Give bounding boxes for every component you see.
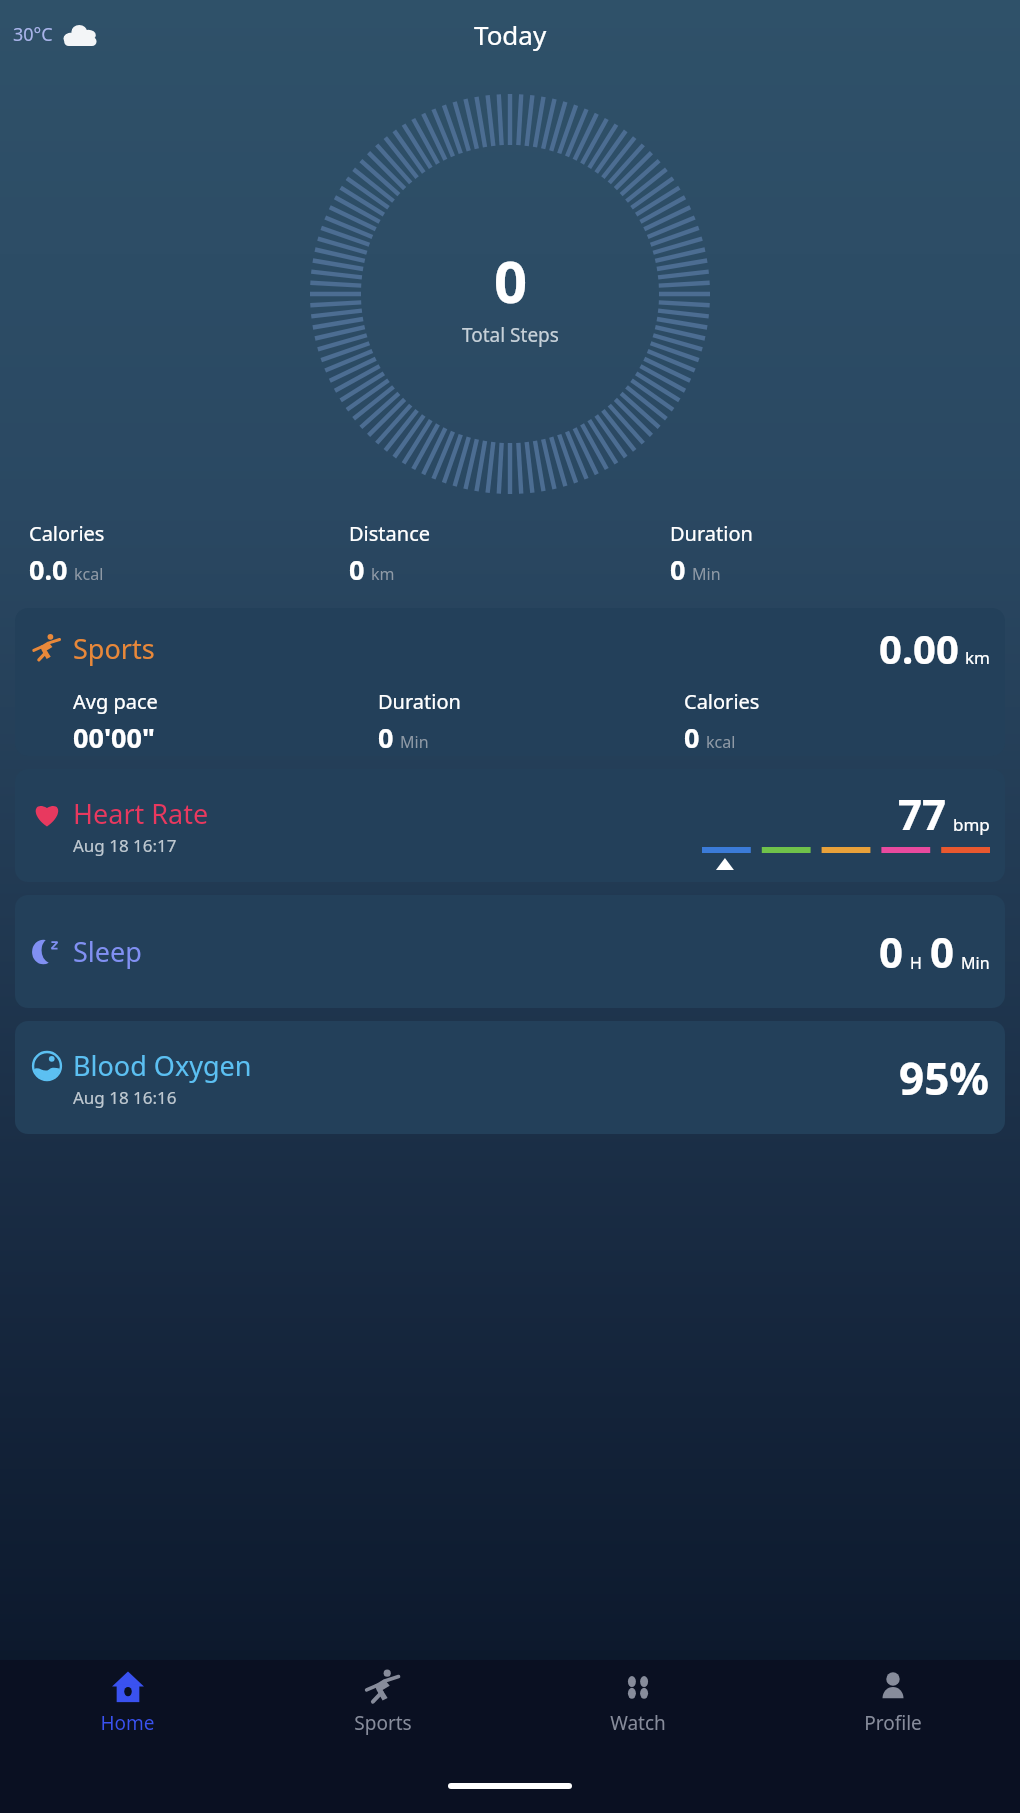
staticText: Min: [400, 731, 429, 753]
staticText: Home: [100, 1710, 155, 1736]
staticText: Distance: [349, 520, 431, 547]
button[interactable]: Sleep: [15, 895, 1005, 1008]
staticText: Duration: [670, 520, 753, 547]
other: Weather: [62, 23, 98, 47]
staticText: Avg pace: [73, 688, 158, 715]
staticText: km: [965, 646, 990, 669]
staticText: 0: [879, 923, 904, 980]
staticText: 0: [684, 719, 700, 756]
staticText: km: [371, 563, 395, 585]
staticText: Aug 18 16:16: [73, 1086, 177, 1109]
staticText: Sports: [73, 630, 155, 667]
staticText: Aug 18 16:17: [73, 834, 177, 857]
staticText: 95%: [899, 1048, 990, 1108]
staticText: bmp: [953, 813, 990, 836]
button[interactable]: Home: [0, 1660, 255, 1758]
staticText: Duration: [378, 688, 461, 715]
button[interactable]: Sports: [15, 608, 1005, 756]
staticText: Calories: [684, 688, 760, 715]
staticText: 0: [349, 551, 365, 588]
button[interactable]: Heart Rate: [15, 769, 1005, 882]
staticText: Today: [474, 17, 547, 52]
staticText: 0: [494, 241, 528, 320]
staticText: H: [910, 952, 922, 974]
staticText: Profile: [864, 1710, 922, 1736]
staticText: Min: [692, 563, 721, 585]
button[interactable]: Profile: [765, 1660, 1020, 1758]
staticText: 0.0: [29, 551, 68, 588]
staticText: Calories: [29, 520, 105, 547]
button[interactable]: Watch: [510, 1660, 765, 1758]
staticText: Sports: [354, 1710, 412, 1736]
staticText: 30°C: [13, 22, 53, 47]
staticText: 00'00": [73, 719, 155, 756]
staticText: 0: [930, 923, 955, 980]
staticText: kcal: [706, 731, 736, 753]
staticText: Watch: [610, 1710, 666, 1736]
staticText: 0: [670, 551, 686, 588]
button[interactable]: Sports: [255, 1660, 510, 1758]
staticText: Sleep: [73, 933, 142, 970]
staticText: 0.00: [879, 621, 959, 675]
staticText: Blood Oxygen: [73, 1047, 252, 1084]
staticText: Heart Rate: [73, 795, 209, 832]
staticText: Total Steps: [462, 322, 559, 348]
staticText: kcal: [74, 563, 104, 585]
staticText: Min: [961, 952, 990, 974]
button[interactable]: Blood Oxygen: [15, 1021, 1005, 1134]
staticText: 0: [378, 719, 394, 756]
staticText: 77: [898, 785, 947, 842]
